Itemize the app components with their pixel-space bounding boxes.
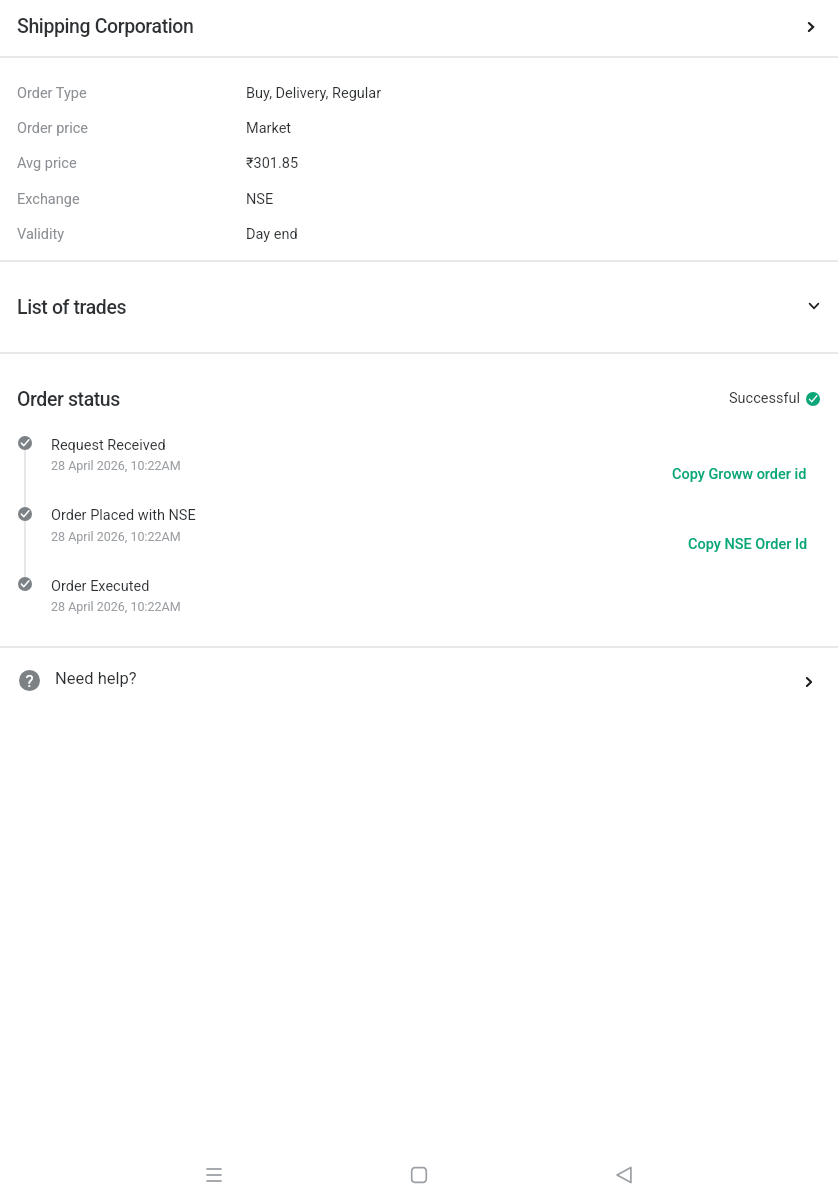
staticText: Order status bbox=[17, 388, 120, 411]
staticText: Order Placed with NSE bbox=[51, 507, 196, 524]
staticText: Successful bbox=[729, 390, 800, 407]
staticText: 28 April 2026, 10:22AM bbox=[51, 458, 181, 473]
staticText: List of trades bbox=[17, 296, 127, 319]
staticText: Order Type bbox=[17, 85, 87, 102]
button[interactable]: Copy Groww order id bbox=[663, 462, 815, 486]
staticText: 28 April 2026, 10:22AM bbox=[51, 599, 181, 614]
staticText: NSE bbox=[246, 191, 274, 208]
staticText: 28 April 2026, 10:22AM bbox=[51, 529, 181, 544]
staticText: ₹301.85 bbox=[246, 155, 299, 172]
button[interactable]: Recent apps bbox=[194, 1155, 234, 1195]
staticText: Copy NSE Order Id bbox=[688, 536, 808, 553]
staticText: Copy Groww order id bbox=[672, 466, 807, 483]
staticText: Exchange bbox=[17, 191, 80, 208]
button[interactable]: List of trades bbox=[0, 262, 838, 351]
staticText: Validity bbox=[17, 226, 65, 243]
staticText: Shipping Corporation bbox=[17, 15, 194, 38]
staticText: ? bbox=[25, 671, 34, 691]
staticText: Buy, Delivery, Regular bbox=[246, 85, 382, 102]
staticText: Order price bbox=[17, 120, 88, 137]
staticText: Order Executed bbox=[51, 578, 150, 595]
button[interactable]: Copy NSE Order Id bbox=[681, 532, 815, 556]
button[interactable]: Back bbox=[604, 1155, 644, 1195]
staticText: Need help? bbox=[55, 669, 137, 688]
staticText: Day end bbox=[246, 226, 298, 243]
staticText: Request Received bbox=[51, 437, 166, 454]
button[interactable]: Home bbox=[399, 1155, 439, 1195]
button[interactable]: ? bbox=[0, 648, 838, 715]
button[interactable]: Shipping Corporation bbox=[0, 0, 838, 55]
staticText: Avg price bbox=[17, 155, 77, 172]
staticText: Market bbox=[246, 120, 292, 137]
